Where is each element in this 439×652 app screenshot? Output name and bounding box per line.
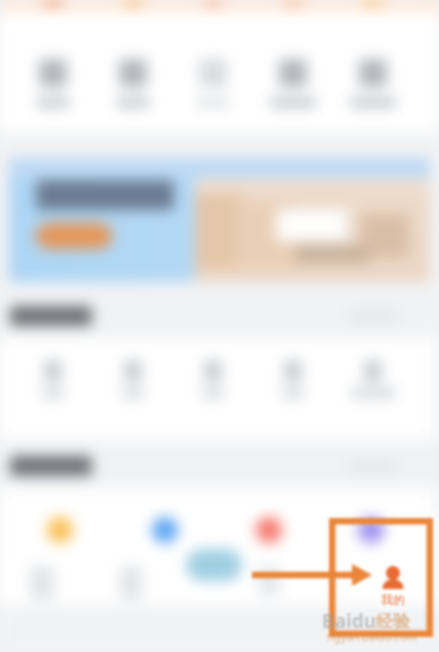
button[interactable]: 服务入口 — [80, 350, 160, 430]
button[interactable]: 快捷入口 — [80, 50, 160, 130]
button[interactable]: 活动横幅 — [9, 158, 430, 282]
button[interactable]: 推荐应用 — [312, 512, 390, 592]
button[interactable]: 推荐应用 — [0, 512, 78, 592]
button[interactable]: 服务入口 — [320, 350, 400, 430]
staticText: ngyan.baidu.com — [327, 629, 417, 644]
button[interactable]: 推荐应用 — [78, 512, 156, 592]
staticText: Baidu — [322, 608, 377, 634]
button[interactable]: 快捷入口 — [0, 50, 80, 130]
button[interactable]: 推荐应用 — [156, 512, 234, 592]
button[interactable]: 服务入口 — [160, 350, 240, 430]
button[interactable]: 服务入口 — [240, 350, 320, 430]
button[interactable]: 服务入口 — [0, 350, 80, 430]
button[interactable]: 快捷入口 — [320, 50, 400, 130]
button[interactable]: 快捷入口 — [160, 50, 240, 130]
button[interactable]: 推荐应用 — [234, 512, 312, 592]
button[interactable]: 快捷入口 — [240, 50, 320, 130]
staticText: 我的 — [381, 592, 405, 607]
staticText: 经验 — [376, 611, 410, 632]
button[interactable]: 我的 — [360, 552, 426, 612]
